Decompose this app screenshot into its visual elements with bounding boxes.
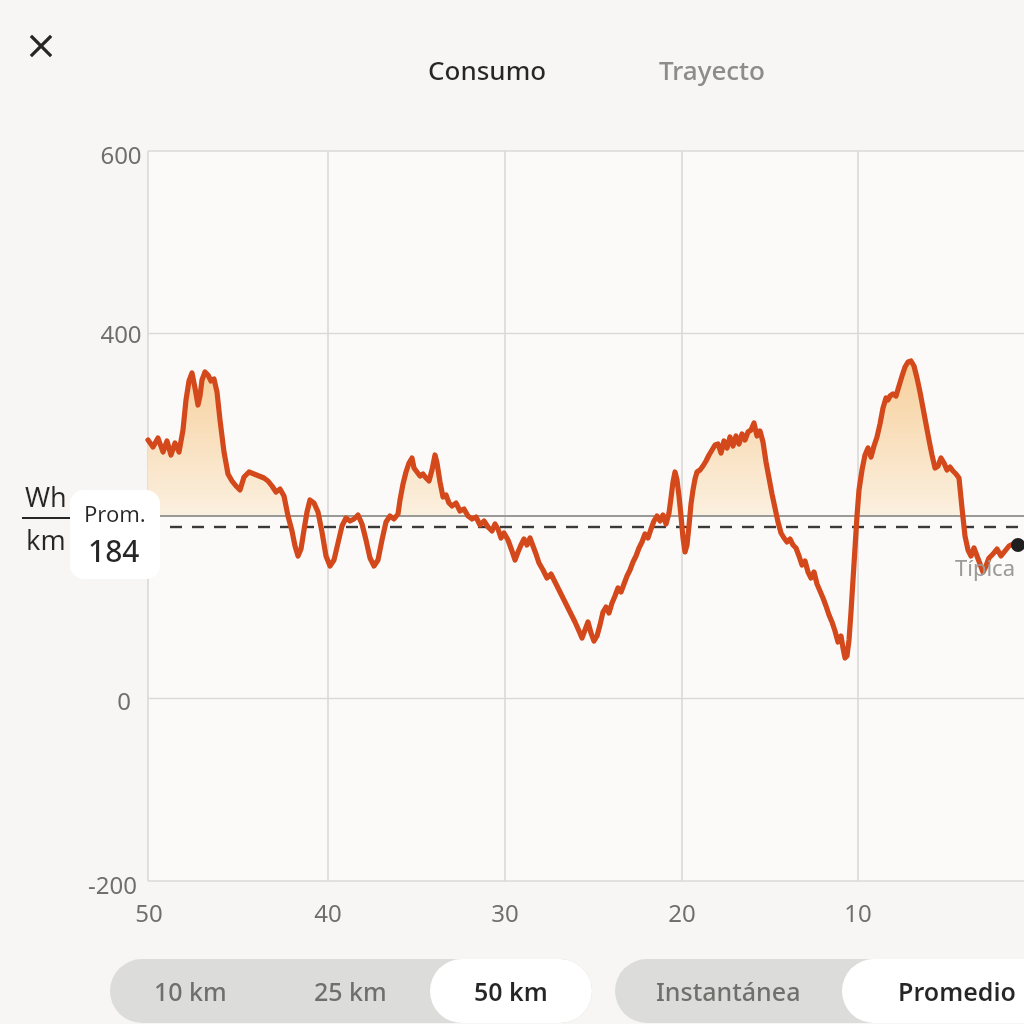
staticText: 10 km [154, 974, 227, 1008]
button[interactable]: Prom. [70, 490, 160, 579]
staticText: Promedio [898, 974, 1016, 1008]
staticText: 40 [314, 896, 342, 929]
staticText: Consumo [428, 52, 547, 87]
staticText: Instantánea [656, 974, 801, 1008]
staticText: 50 [135, 896, 163, 929]
staticText: Típica [955, 552, 1016, 582]
staticText: Trayecto [659, 52, 765, 87]
staticText: 30 [491, 896, 519, 929]
staticText: 400 [100, 317, 142, 350]
staticText: 25 km [314, 974, 387, 1008]
button[interactable]: 25 km [270, 959, 430, 1023]
button[interactable]: 10 km [110, 959, 270, 1023]
button[interactable]: Consumo [420, 46, 555, 93]
staticText: Wh [25, 478, 67, 515]
staticText: -200 [88, 868, 137, 901]
staticText: 10 [844, 896, 872, 929]
staticText: 0 [117, 684, 131, 717]
staticText: km [26, 521, 66, 558]
button[interactable]: Promedio [842, 959, 1024, 1023]
staticText: Prom. [84, 498, 146, 528]
staticText: 20 [668, 896, 696, 929]
button[interactable]: 50 km [430, 959, 592, 1023]
button[interactable]: Trayecto [651, 46, 773, 93]
button[interactable]: Instantánea [615, 959, 842, 1023]
staticText: 184 [88, 530, 140, 571]
staticText: 50 km [474, 974, 548, 1008]
staticText: 600 [100, 138, 142, 171]
button[interactable]: Cerrar [18, 23, 64, 69]
